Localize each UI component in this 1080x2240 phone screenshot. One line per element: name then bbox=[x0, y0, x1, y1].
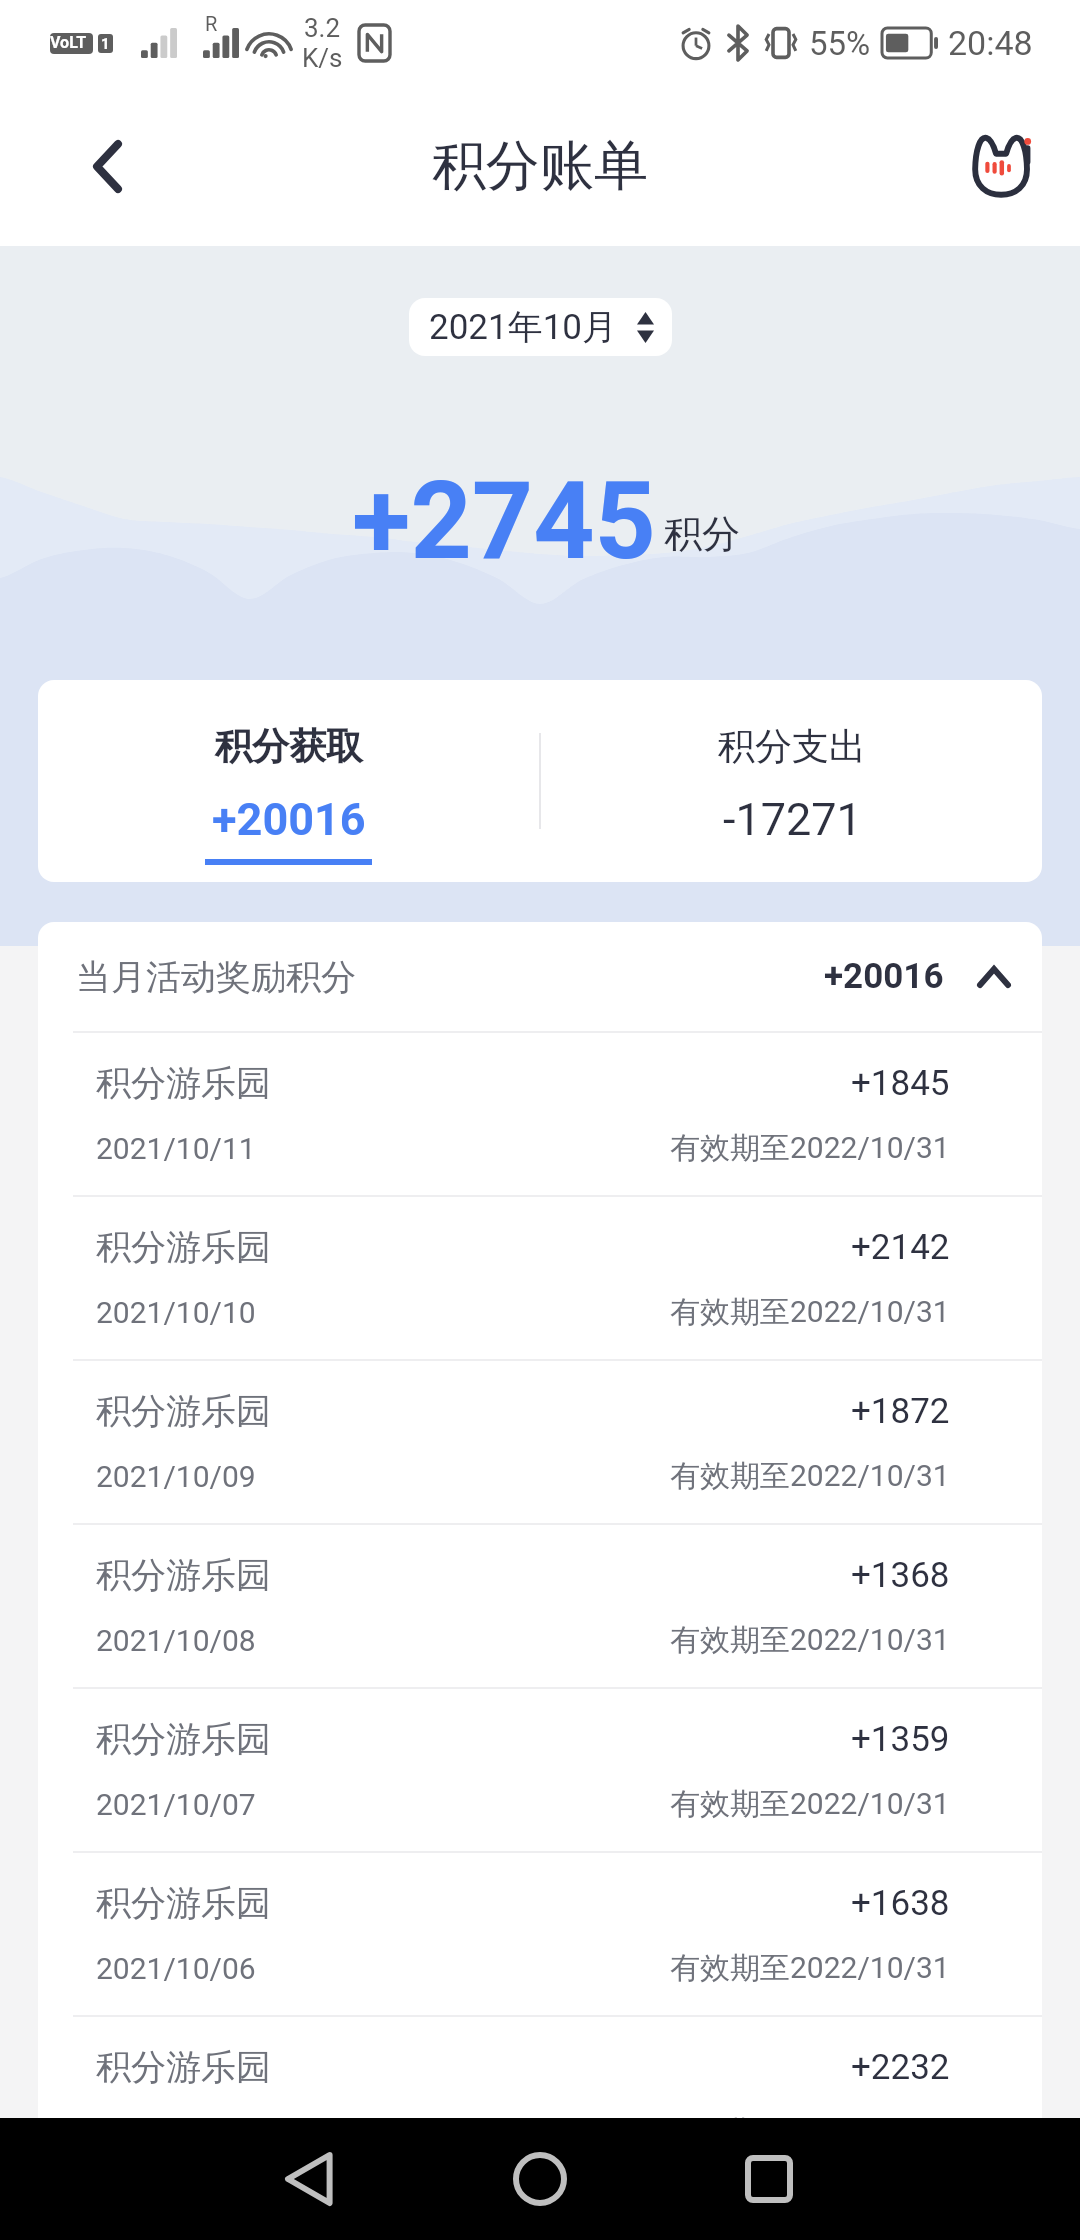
staticText: +1359 bbox=[851, 1719, 950, 1760]
staticText: +1368 bbox=[851, 1555, 950, 1596]
staticText: 当月活动奖励积分 bbox=[76, 955, 356, 999]
staticText: 2021/10/08 bbox=[96, 1623, 256, 1658]
staticText: +2232 bbox=[851, 2047, 950, 2088]
staticText: 有效期至2022/10/31 bbox=[670, 1129, 950, 1167]
staticText: 有效期至2022/10/31 bbox=[670, 1293, 950, 1331]
staticText: 积分游乐园 bbox=[96, 1061, 271, 1105]
staticText: 积分获取 bbox=[215, 723, 363, 770]
staticText: 2021/10/09 bbox=[96, 1459, 256, 1494]
staticText: K/s bbox=[302, 43, 343, 73]
button[interactable]: Back bbox=[248, 2119, 368, 2239]
button[interactable]: 积分游乐园 bbox=[38, 1361, 1042, 1523]
staticText: +1638 bbox=[851, 1883, 950, 1924]
button[interactable]: 积分支出 bbox=[541, 680, 1042, 882]
staticText: +20016 bbox=[212, 793, 366, 846]
button[interactable]: 2021年10月 bbox=[409, 298, 672, 356]
staticText: 2021/10/06 bbox=[96, 1951, 256, 1986]
staticText: +2142 bbox=[851, 1227, 950, 1268]
staticText: 积分游乐园 bbox=[96, 1389, 271, 1433]
staticText: 2021/10/07 bbox=[96, 1787, 256, 1822]
button[interactable]: Back bbox=[62, 121, 152, 211]
staticText: 55% bbox=[809, 24, 871, 63]
staticText: 有效期至2022/10/31 bbox=[670, 1785, 950, 1823]
staticText: 积分游乐园 bbox=[96, 1881, 271, 1925]
staticText: 有效期至2022/10/31 bbox=[670, 1949, 950, 1987]
button[interactable]: 积分游乐园 bbox=[38, 1033, 1042, 1195]
button[interactable]: 积分游乐园 bbox=[38, 1853, 1042, 2015]
staticText: +1845 bbox=[851, 1063, 950, 1104]
staticText: R bbox=[205, 12, 218, 35]
button[interactable]: 积分游乐园 bbox=[38, 2017, 1042, 2118]
staticText: 2021/10/11 bbox=[96, 1131, 256, 1166]
staticText: 有效期至2022/10/31 bbox=[670, 1457, 950, 1495]
button[interactable]: 积分游乐园 bbox=[38, 1689, 1042, 1851]
staticText: 积分账单 bbox=[432, 132, 648, 200]
staticText: 积分支出 bbox=[718, 723, 866, 770]
staticText: 积分游乐园 bbox=[96, 1553, 271, 1597]
button[interactable]: Home bbox=[480, 2119, 600, 2239]
staticText: 3.2 bbox=[304, 13, 341, 43]
button[interactable]: 积分游乐园 bbox=[38, 1197, 1042, 1359]
staticText: 有效期至2022/10/31 bbox=[670, 1621, 950, 1659]
button[interactable]: 积分游乐园 bbox=[38, 1525, 1042, 1687]
staticText: 积分游乐园 bbox=[96, 2045, 271, 2089]
staticText: 2021年10月 bbox=[429, 305, 618, 349]
button[interactable]: Assistant bbox=[964, 126, 1036, 198]
staticText: 20:48 bbox=[948, 23, 1033, 63]
staticText: 2021/10/10 bbox=[96, 1295, 256, 1330]
staticText: 积分 bbox=[664, 510, 740, 558]
staticText: 积分游乐园 bbox=[96, 1225, 271, 1269]
button[interactable]: Recent apps bbox=[709, 2119, 829, 2239]
staticText: 1 bbox=[101, 35, 110, 53]
button[interactable]: 当月活动奖励积分 bbox=[38, 922, 1042, 1031]
staticText: +20016 bbox=[824, 956, 944, 997]
staticText: 积分游乐园 bbox=[96, 1717, 271, 1761]
staticText: -17271 bbox=[723, 793, 862, 846]
button[interactable]: 积分获取 bbox=[38, 680, 539, 882]
staticText: VoLTE bbox=[50, 33, 93, 54]
staticText: +2745 bbox=[352, 459, 656, 584]
staticText: +1872 bbox=[851, 1391, 950, 1432]
